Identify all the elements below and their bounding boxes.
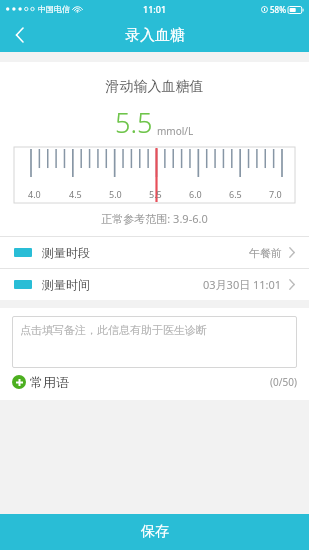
- staticText: 中国电信: [38, 4, 70, 14]
- staticText: mmol/L: [157, 124, 194, 138]
- staticText: 保存: [141, 523, 169, 541]
- staticText: 滑动输入血糖值: [0, 78, 309, 96]
- staticText: 常用语: [30, 374, 69, 390]
- button[interactable]: Back: [0, 18, 38, 52]
- button[interactable]: Add phrase: [12, 374, 69, 390]
- staticText: 5.0: [109, 188, 122, 200]
- staticText: 午餐前: [249, 246, 282, 260]
- staticText: 4.5: [69, 188, 82, 200]
- button[interactable]: 点击填写备注，此信息有助于医生诊断: [12, 316, 297, 368]
- staticText: 5.5: [115, 104, 153, 141]
- staticText: 58%: [270, 4, 286, 15]
- staticText: 测量时段: [42, 245, 90, 260]
- staticText: 测量时间: [42, 277, 90, 292]
- other: Add phrase: [12, 375, 26, 389]
- button[interactable]: 测量时段: [0, 237, 309, 268]
- staticText: 4.0: [28, 188, 41, 200]
- button[interactable]: 保存: [0, 514, 309, 550]
- staticText: 6.0: [189, 188, 202, 200]
- button[interactable]: 测量时间: [0, 269, 309, 300]
- staticText: 6.5: [229, 188, 242, 200]
- staticText: (0/50): [270, 375, 297, 389]
- staticText: 03月30日 11:01: [203, 277, 282, 292]
- staticText: 点击填写备注，此信息有助于医生诊断: [20, 323, 207, 337]
- staticText: 11:01: [143, 3, 167, 15]
- staticText: 录入血糖: [125, 26, 185, 45]
- staticText: 5.5: [149, 188, 162, 200]
- staticText: 正常参考范围: 3.9-6.0: [0, 211, 309, 226]
- staticText: 7.0: [269, 188, 282, 200]
